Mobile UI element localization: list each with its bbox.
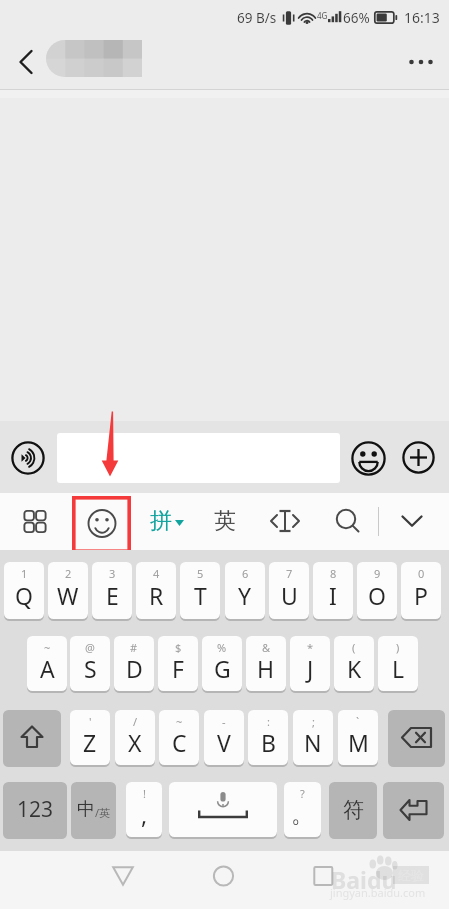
button[interactable]: Move cursor: [266, 503, 304, 539]
button[interactable]: ': [70, 710, 110, 765]
staticText: ;: [312, 714, 315, 729]
staticText: P: [414, 580, 428, 611]
staticText: H: [257, 653, 275, 684]
staticText: *: [307, 640, 314, 655]
button[interactable]: 123: [3, 782, 67, 837]
button[interactable]: Space: [169, 782, 277, 837]
staticText: L: [392, 653, 405, 684]
staticText: F: [172, 653, 184, 684]
staticText: 3: [109, 566, 116, 581]
button[interactable]: 3: [92, 562, 132, 619]
staticText: 6: [242, 566, 249, 581]
button[interactable]: 中: [71, 782, 116, 837]
staticText: `: [356, 714, 360, 729]
button[interactable]: Emoji picker: [73, 496, 131, 553]
button[interactable]: (: [334, 636, 374, 691]
staticText: 5: [197, 566, 204, 581]
staticText: ': [89, 714, 92, 729]
staticText: $: [175, 640, 182, 655]
button[interactable]: Enter: [383, 782, 444, 837]
staticText: ~: [176, 714, 183, 729]
staticText: S: [84, 653, 97, 684]
staticText: -: [222, 714, 226, 729]
staticText: U: [281, 580, 298, 611]
staticText: 4: [153, 566, 160, 581]
button[interactable]: 0: [401, 562, 441, 619]
button[interactable]: More options: [398, 39, 444, 85]
staticText: ,: [141, 799, 148, 830]
button[interactable]: !: [126, 782, 162, 837]
staticText: Baidu: [331, 864, 397, 895]
button[interactable]: Keyboard layouts: [13, 504, 57, 539]
button[interactable]: 1: [4, 562, 44, 619]
button[interactable]: `: [338, 710, 378, 765]
staticText: J: [307, 653, 314, 684]
staticText: G: [214, 653, 231, 684]
button[interactable]: Hide keyboard: [393, 503, 431, 539]
staticText: 9: [374, 566, 381, 581]
staticText: R: [149, 580, 164, 611]
button[interactable]: Back: [101, 854, 145, 898]
button[interactable]: &: [246, 636, 286, 691]
staticText: ?: [300, 786, 305, 801]
button[interactable]: @: [70, 636, 110, 691]
staticText: @: [85, 640, 95, 655]
button[interactable]: #: [114, 636, 154, 691]
button[interactable]: Search: [328, 503, 366, 539]
button[interactable]: Emoji: [351, 441, 386, 476]
staticText: C: [172, 727, 187, 758]
staticText: /英: [95, 805, 111, 820]
staticText: #: [130, 640, 138, 655]
button[interactable]: /: [115, 710, 155, 765]
button[interactable]: Voice input: [11, 441, 45, 475]
staticText: Z: [83, 727, 97, 758]
button[interactable]: %: [202, 636, 242, 691]
button[interactable]: [57, 433, 340, 483]
button[interactable]: ;: [293, 710, 333, 765]
staticText: 123: [17, 795, 54, 824]
staticText: 4G: [317, 10, 328, 21]
button[interactable]: 符: [329, 782, 377, 837]
staticText: 66%: [343, 9, 370, 27]
button[interactable]: 4: [136, 562, 176, 619]
button[interactable]: Back: [2, 39, 48, 85]
staticText: I: [329, 580, 337, 611]
staticText: A: [40, 653, 55, 684]
button[interactable]: 英: [210, 503, 240, 539]
staticText: D: [126, 653, 143, 684]
button[interactable]: Add attachment: [402, 441, 435, 474]
button[interactable]: 7: [269, 562, 309, 619]
button[interactable]: ~: [27, 636, 67, 691]
staticText: 。: [291, 800, 314, 829]
staticText: 2: [65, 566, 72, 581]
button[interactable]: Shift: [3, 710, 61, 765]
button[interactable]: :: [248, 710, 288, 765]
button[interactable]: 8: [313, 562, 353, 619]
button[interactable]: ~: [159, 710, 199, 765]
button[interactable]: -: [204, 710, 244, 765]
staticText: 16:13: [404, 8, 440, 27]
staticText: E: [106, 580, 119, 611]
button[interactable]: 拼: [150, 503, 184, 539]
staticText: Q: [15, 580, 33, 611]
button[interactable]: ?: [284, 782, 321, 837]
staticText: 69 B/s: [237, 9, 277, 27]
button[interactable]: Home: [201, 854, 245, 898]
staticText: O: [368, 580, 386, 611]
button[interactable]: ): [378, 636, 418, 691]
button[interactable]: 5: [180, 562, 220, 619]
button[interactable]: 6: [225, 562, 265, 619]
button[interactable]: Backspace: [388, 710, 445, 765]
staticText: 英: [214, 507, 236, 535]
button[interactable]: 2: [48, 562, 88, 619]
button[interactable]: 9: [357, 562, 397, 619]
staticText: ~: [44, 640, 51, 655]
staticText: 8: [330, 566, 337, 581]
staticText: X: [128, 727, 142, 758]
staticText: W: [57, 580, 79, 611]
button[interactable]: Recent apps: [301, 854, 345, 898]
button[interactable]: $: [158, 636, 198, 691]
button[interactable]: *: [290, 636, 330, 691]
staticText: &: [262, 640, 271, 655]
